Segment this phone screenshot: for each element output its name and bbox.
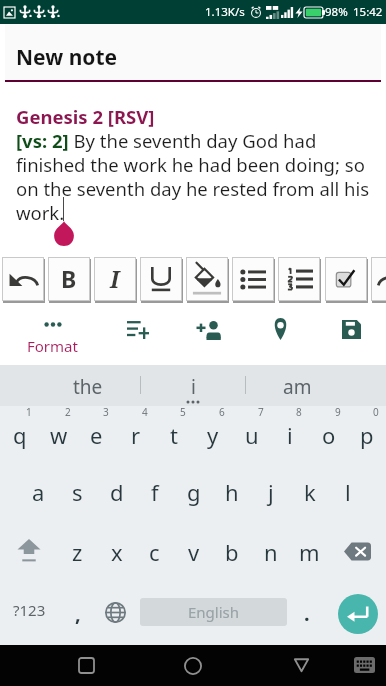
staticText: 98% xyxy=(325,4,348,20)
button[interactable]: Bulleted list xyxy=(233,258,273,300)
button[interactable]: d xyxy=(97,461,136,521)
button[interactable]: q xyxy=(0,404,39,464)
staticText: p xyxy=(360,420,374,450)
button[interactable]: Italic xyxy=(95,258,135,300)
button[interactable]: s xyxy=(58,461,97,521)
button[interactable]: y xyxy=(193,404,232,464)
staticText: s xyxy=(72,477,83,507)
staticText: 0 xyxy=(373,405,379,419)
button[interactable]: Backspace xyxy=(328,521,386,581)
button[interactable]: z xyxy=(58,521,97,581)
staticText: w xyxy=(50,420,68,450)
staticText: 7 xyxy=(258,405,264,419)
button[interactable]: Checkbox xyxy=(326,258,366,300)
button[interactable]: Keyboard xyxy=(342,645,386,685)
staticText: r xyxy=(131,420,141,450)
staticText: l xyxy=(345,477,351,507)
button[interactable]: Fill colour xyxy=(187,258,227,300)
staticText: u xyxy=(245,420,259,450)
staticText: n xyxy=(264,537,278,567)
button[interactable]: p xyxy=(347,404,386,464)
staticText: m xyxy=(299,537,320,567)
button[interactable]: o xyxy=(309,404,348,464)
button[interactable]: l xyxy=(328,461,367,521)
button[interactable]: Back xyxy=(279,645,323,685)
button[interactable]: Save xyxy=(328,306,374,352)
staticText: 1 xyxy=(26,405,32,419)
button[interactable]: Undo xyxy=(3,258,43,300)
staticText: English xyxy=(188,602,240,622)
staticText: 9 xyxy=(335,405,341,419)
staticText: Format xyxy=(27,336,78,356)
button[interactable]: m xyxy=(290,521,329,581)
staticText: 15:42 xyxy=(353,4,383,20)
button[interactable]: e xyxy=(77,404,116,464)
button[interactable]: Redo xyxy=(372,258,386,300)
button[interactable]: ?123 xyxy=(0,580,58,640)
button[interactable]: English xyxy=(140,598,287,626)
staticText: 3 xyxy=(103,405,109,419)
button[interactable]: r xyxy=(116,404,155,464)
button[interactable]: , xyxy=(58,580,98,640)
button[interactable]: x xyxy=(97,521,136,581)
staticText: 1.13K/s xyxy=(205,4,245,20)
button[interactable]: k xyxy=(290,461,329,521)
button[interactable]: . xyxy=(289,580,325,640)
staticText: i xyxy=(191,374,196,400)
button[interactable]: b xyxy=(212,521,251,581)
button[interactable]: Change language xyxy=(93,580,137,640)
staticText: z xyxy=(72,537,83,567)
button[interactable]: u xyxy=(232,404,271,464)
button[interactable]: c xyxy=(135,521,174,581)
button[interactable]: i xyxy=(148,365,238,405)
button[interactable]: h xyxy=(212,461,251,521)
button[interactable]: the xyxy=(43,365,133,405)
staticText: 2 xyxy=(65,405,71,419)
staticText: g xyxy=(187,477,201,507)
button[interactable]: t xyxy=(154,404,193,464)
staticText: , xyxy=(75,600,81,627)
staticText: b xyxy=(225,537,239,567)
staticText: . xyxy=(304,600,310,627)
button[interactable]: Location xyxy=(257,306,303,352)
staticText: h xyxy=(225,477,239,507)
staticText: y xyxy=(207,420,219,450)
button[interactable]: Underline xyxy=(141,258,181,300)
staticText: i xyxy=(287,420,293,450)
staticText: e xyxy=(90,420,103,450)
button[interactable]: f xyxy=(135,461,174,521)
button[interactable]: n xyxy=(251,521,290,581)
staticText: B xyxy=(61,263,77,294)
staticText: I xyxy=(110,263,120,294)
button[interactable]: Enter xyxy=(331,580,386,640)
staticText: c xyxy=(149,537,160,567)
staticText: 6 xyxy=(219,405,225,419)
staticText: j xyxy=(268,477,274,507)
button[interactable]: am xyxy=(252,365,342,405)
button[interactable]: Home xyxy=(171,646,215,686)
staticText: f xyxy=(151,477,159,507)
staticText: ?123 xyxy=(13,600,46,620)
button[interactable]: w xyxy=(39,404,78,464)
button[interactable]: j xyxy=(251,461,290,521)
staticText: 5 xyxy=(180,405,186,419)
button[interactable]: Numbered list xyxy=(279,258,319,300)
staticText: New note xyxy=(16,43,118,72)
staticText: 4 xyxy=(142,405,148,419)
button[interactable]: Format xyxy=(8,304,96,358)
button[interactable]: Add list xyxy=(115,306,161,352)
button[interactable]: Shift xyxy=(0,521,58,581)
button[interactable]: a xyxy=(19,461,58,521)
staticText: t xyxy=(170,420,178,450)
staticText: 8 xyxy=(296,405,302,419)
button[interactable]: v xyxy=(174,521,213,581)
button[interactable]: Bold xyxy=(49,258,89,300)
staticText: q xyxy=(13,420,27,450)
staticText: k xyxy=(304,477,316,507)
button[interactable]: Recents xyxy=(64,645,108,685)
staticText: o xyxy=(322,420,336,450)
button[interactable]: g xyxy=(174,461,213,521)
button[interactable]: Add person xyxy=(186,306,232,352)
button[interactable]: i xyxy=(270,404,309,464)
staticText: am xyxy=(283,374,312,400)
